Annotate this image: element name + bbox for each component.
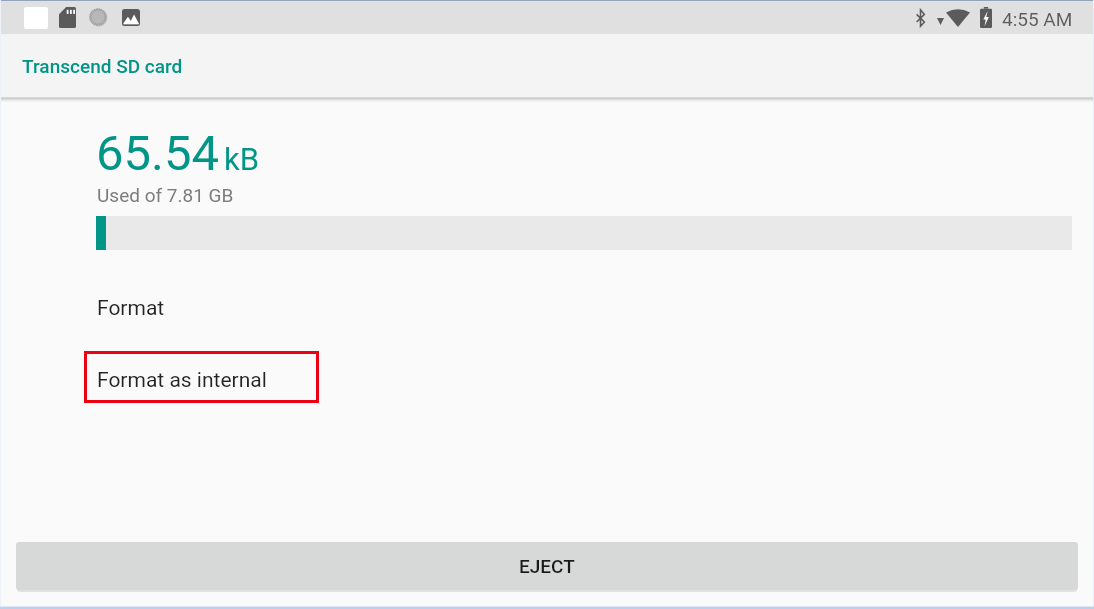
staticText: Format — [97, 296, 165, 321]
button[interactable]: EJECT — [16, 542, 1078, 590]
staticText: EJECT — [519, 555, 575, 577]
button[interactable]: Format — [0, 276, 1094, 338]
other: Working — [89, 8, 107, 26]
staticText: Used of 7.81 GB — [97, 184, 234, 206]
staticText: Transcend SD card — [22, 55, 183, 77]
staticText: Format as internal — [97, 368, 267, 393]
other: SD card — [59, 7, 76, 28]
staticText: 65.54 — [96, 125, 220, 182]
other: Bluetooth on — [915, 9, 926, 27]
staticText: 4:55 AM — [1002, 8, 1073, 30]
other: Battery charging — [980, 7, 992, 28]
staticText: kB — [224, 141, 260, 177]
other: Screenshot captured — [122, 7, 140, 28]
other: No SIM — [937, 18, 944, 25]
other: Wi-Fi full signal — [946, 8, 970, 27]
button[interactable]: Format as internal — [0, 351, 1094, 403]
